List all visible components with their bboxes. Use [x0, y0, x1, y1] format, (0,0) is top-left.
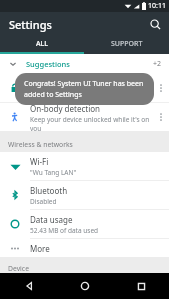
button[interactable]: More options — [153, 103, 169, 131]
staticText: Wireless & networks — [8, 140, 73, 149]
staticText: Device — [8, 264, 29, 273]
button[interactable]: Home — [57, 273, 113, 299]
staticText: Settings — [9, 17, 52, 32]
staticText: Disabled — [30, 197, 57, 206]
staticText: Protect your device — [30, 90, 89, 99]
staticText: 10:11 — [148, 1, 166, 11]
button[interactable]: SUPPORT — [84, 36, 169, 52]
staticText: "Wu Tang LAN" — [30, 168, 77, 177]
staticText: Congrats! System UI Tuner has been added… — [24, 79, 145, 99]
button[interactable]: Search — [146, 15, 164, 33]
button[interactable]: Data usage — [0, 210, 169, 238]
button[interactable]: Recents — [113, 273, 169, 299]
button[interactable]: More — [0, 239, 169, 257]
button[interactable]: Suggestions — [0, 54, 169, 74]
button[interactable]: More options — [153, 74, 169, 102]
staticText: More — [30, 243, 50, 254]
staticText: Data usage — [30, 214, 73, 225]
button[interactable]: Set screen lock — [0, 74, 169, 102]
staticText: Bluetooth — [30, 185, 68, 196]
button[interactable]: Wi-Fi — [0, 152, 169, 180]
button[interactable]: Bluetooth — [0, 181, 169, 209]
staticText: Suggestions — [26, 59, 70, 69]
button[interactable]: ALL — [0, 36, 84, 52]
button[interactable]: Back — [0, 273, 57, 299]
staticText: 52.43 MB of data used — [30, 226, 99, 235]
button[interactable]: On-body detection — [0, 103, 169, 131]
staticText: Set screen lock — [30, 78, 86, 89]
staticText: SUPPORT — [111, 39, 143, 49]
staticText: +2 — [153, 59, 162, 69]
staticText: Wi-Fi — [30, 156, 49, 167]
staticText: ALL — [36, 39, 49, 49]
staticText: Keep your device unlocked while it's on … — [30, 115, 153, 131]
staticText: On-body detection — [30, 103, 101, 114]
